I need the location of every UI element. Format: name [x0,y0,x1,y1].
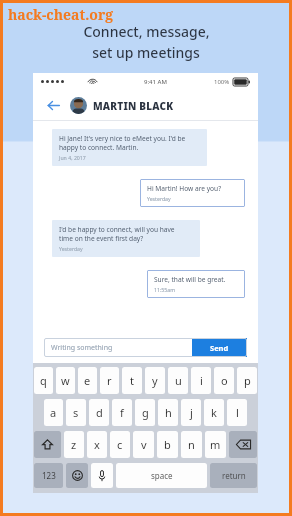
staticText: Jun 4, 2017 [59,154,86,161]
button[interactable]: Sure, that will be great. [147,270,245,298]
button[interactable]: f [112,399,132,426]
button[interactable]: MARTIN BLACK [70,97,174,114]
button[interactable]: r [100,367,119,394]
staticText: b [164,437,171,452]
staticText: q [40,373,47,388]
staticText: r [107,373,112,388]
button[interactable]: Emoji [66,463,88,488]
button[interactable]: I'd be happy to connect, will you have [52,220,200,257]
button[interactable]: p [237,367,257,394]
button[interactable]: u [168,367,188,394]
staticText: 100% [214,78,230,86]
button[interactable]: b [157,431,178,458]
staticText: Yesterday [59,245,83,252]
staticText: k [211,405,217,420]
staticText: p [244,373,251,388]
button[interactable]: w [56,367,75,394]
button[interactable]: x [87,431,107,458]
button[interactable]: q [34,367,53,394]
button[interactable]: y [145,367,165,394]
staticText: f [120,405,124,420]
button[interactable]: c [110,431,130,458]
staticText: Sure, that will be great. [154,275,226,284]
staticText: d [96,405,103,420]
staticText: z [71,437,77,452]
button[interactable]: s [66,399,86,426]
button[interactable]: Hi Martin! How are you? [140,179,245,207]
button[interactable]: e [78,367,97,394]
button[interactable]: d [89,399,109,426]
button[interactable]: h [158,399,178,426]
staticText: n [188,437,195,452]
staticText: time on the event first day? [59,234,144,243]
staticText: s [73,405,79,420]
button[interactable]: space [116,463,207,488]
button[interactable]: v [133,431,154,458]
button[interactable]: Hi Jane! It's very nice to eMeet you. I'… [52,129,207,166]
staticText: Connect, message, [83,22,210,41]
staticText: g [142,405,149,420]
button[interactable]: m [205,431,226,458]
staticText: Hi Jane! It's very nice to eMeet you. I'… [59,134,186,143]
staticText: set up meetings [92,43,200,62]
button[interactable]: Send [192,338,247,357]
button[interactable]: Voice input [91,463,113,488]
button[interactable]: z [64,431,84,458]
button[interactable]: o [214,367,234,394]
staticText: u [175,373,182,388]
staticText: return [222,470,246,481]
button[interactable]: Back [43,95,63,115]
staticText: l [236,405,239,420]
button[interactable]: n [181,431,202,458]
staticText: a [50,405,57,420]
staticText: t [130,373,134,388]
staticText: x [94,437,100,452]
button[interactable]: i [191,367,211,394]
button[interactable]: j [181,399,201,426]
staticText: c [117,437,123,452]
staticText: space [151,470,173,481]
staticText: w [61,373,70,388]
button[interactable]: Backspace [229,431,257,458]
staticText: 9:41 AM [144,78,167,86]
staticText: e [84,373,91,388]
button[interactable]: l [227,399,247,426]
button[interactable]: Writing something [44,338,192,357]
button[interactable]: return [210,463,257,488]
staticText: MARTIN BLACK [93,99,174,113]
staticText: y [152,373,158,388]
staticText: happy to connect. Martin. [59,143,139,152]
button[interactable]: t [122,367,142,394]
staticText: i [200,373,203,388]
staticText: I'd be happy to connect, will you have [59,225,175,234]
button[interactable]: k [204,399,224,426]
staticText: o [221,373,228,388]
button[interactable]: Shift [34,431,61,458]
staticText: m [210,437,221,452]
staticText: Yesterday [147,195,171,202]
button[interactable]: g [135,399,155,426]
button[interactable]: 123 [34,463,63,488]
staticText: Writing something [51,343,113,353]
button[interactable]: a [44,399,63,426]
staticText: j [190,405,193,420]
staticText: Send [210,343,229,353]
staticText: Hi Martin! How are you? [147,184,222,193]
staticText: h [165,405,172,420]
staticText: hack-cheat.org [8,5,114,24]
staticText: 123 [42,470,56,481]
staticText: 11:55am [154,286,176,293]
staticText: v [141,437,147,452]
